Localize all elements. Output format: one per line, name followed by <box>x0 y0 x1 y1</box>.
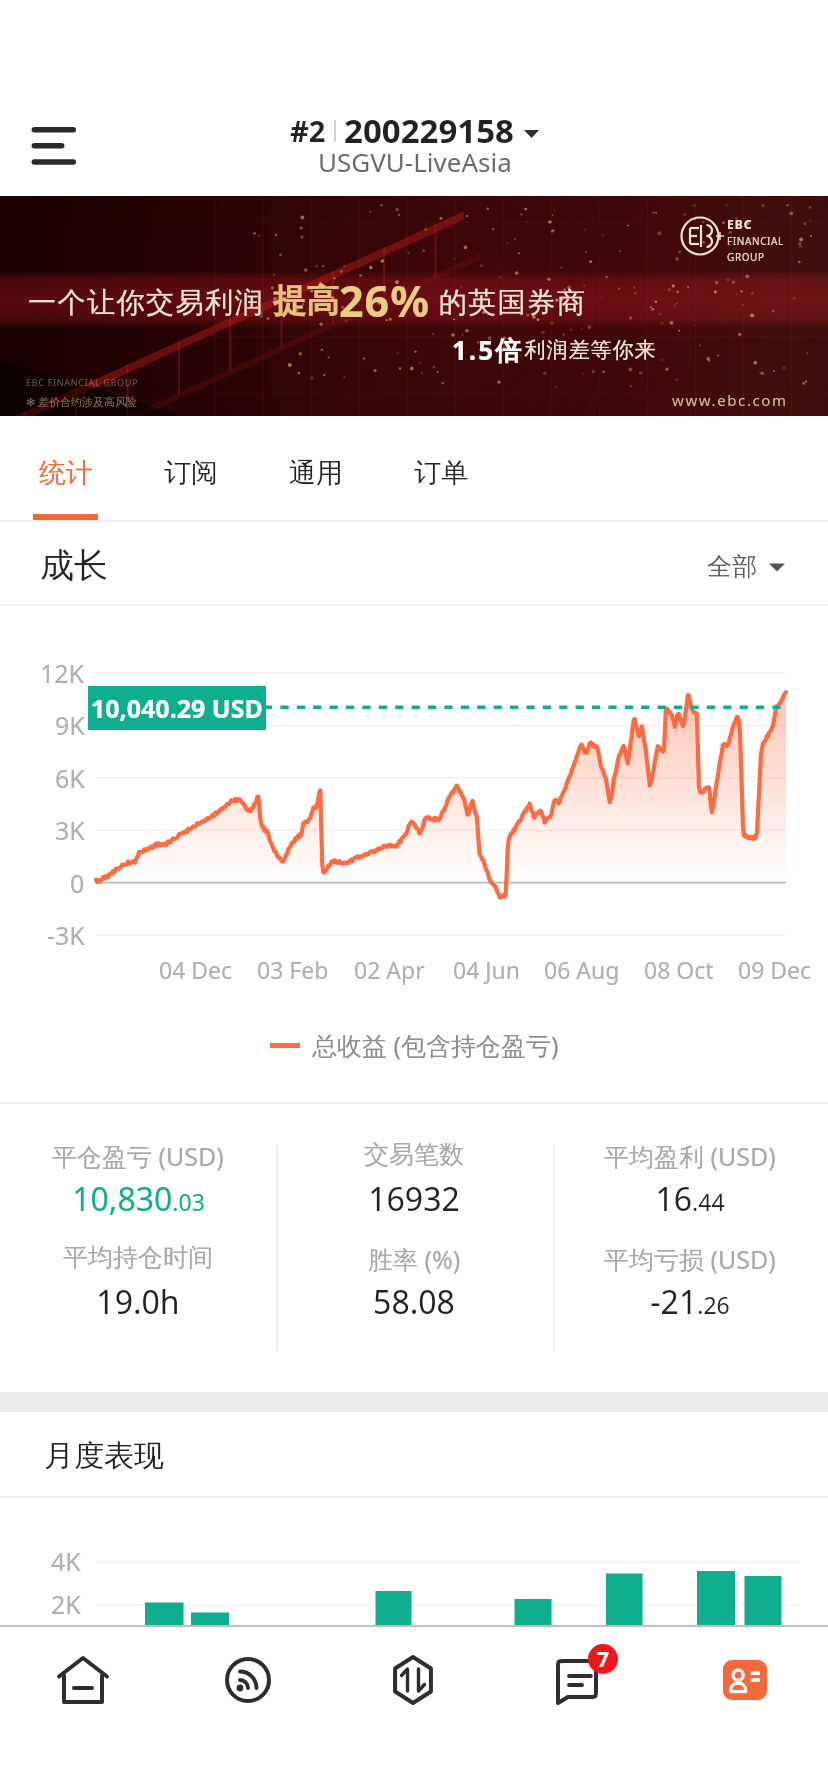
staticText: 04 Dec <box>159 954 233 985</box>
staticText: 平均亏损 (USD) <box>604 1242 776 1276</box>
staticText: 全部 <box>707 551 757 582</box>
button[interactable]: 平均盈利 (USD) <box>552 1102 828 1205</box>
button[interactable]: 统计 <box>3 416 128 522</box>
staticText: EBC FINANCIAL GROUP <box>26 376 139 388</box>
staticText: 26% <box>339 271 430 330</box>
button[interactable]: 胜率 (%) <box>276 1205 552 1308</box>
staticText: USGVU-LiveAsia <box>318 144 512 179</box>
staticText: 10,830.03 <box>72 1177 205 1221</box>
staticText: 2K <box>51 1587 81 1621</box>
staticText: 09 Dec <box>738 954 812 985</box>
staticText: 提高 <box>273 280 339 322</box>
button[interactable]: Trade <box>330 1625 496 1792</box>
button[interactable]: Home <box>0 1625 165 1792</box>
staticText: 200229158 <box>344 108 514 153</box>
staticText: -21.26 <box>650 1280 730 1324</box>
button[interactable]: Menu <box>4 106 84 186</box>
staticText: 订单 <box>414 456 468 490</box>
staticText: www.ebc.com <box>672 390 788 410</box>
button[interactable]: 平均持仓时间 <box>0 1205 276 1308</box>
staticText: GROUP <box>727 250 765 264</box>
staticText: 平均持仓时间 <box>63 1242 213 1273</box>
button[interactable]: 订单 <box>378 416 503 522</box>
staticText: 7 <box>597 1645 610 1674</box>
staticText: 9K <box>55 708 85 742</box>
button[interactable]: Promotion banner <box>0 196 828 416</box>
staticText: 订阅 <box>164 456 218 490</box>
staticText: 12K <box>40 656 85 690</box>
staticText: 平仓盈亏 (USD) <box>52 1139 224 1173</box>
button[interactable]: 交易笔数 <box>276 1102 552 1205</box>
button[interactable]: Messages <box>496 1625 662 1792</box>
staticText: 10,040.29 USD <box>91 691 263 725</box>
staticText: 的英国券商 <box>430 282 587 320</box>
staticText: 总收益 (包含持仓盈亏) <box>312 1028 559 1062</box>
staticText: 成长 <box>40 544 108 587</box>
staticText: 交易笔数 <box>364 1139 464 1170</box>
staticText: 月度表现 <box>44 1437 164 1475</box>
button[interactable]: 通用 <box>253 416 378 522</box>
staticText: 4K <box>51 1544 81 1578</box>
button[interactable]: Signals <box>165 1625 330 1792</box>
staticText: 19.0h <box>96 1280 180 1324</box>
staticText: #2 <box>290 111 326 150</box>
button[interactable]: 平均亏损 (USD) <box>552 1205 828 1308</box>
staticText: 通用 <box>289 456 343 490</box>
staticText: 3K <box>55 813 85 847</box>
staticText: 利润差等你来 <box>524 337 656 363</box>
staticText: FINANCIAL <box>727 234 784 248</box>
staticText: -3K <box>47 918 85 952</box>
staticText: EBC <box>727 216 753 232</box>
staticText: 16.44 <box>655 1177 725 1221</box>
staticText: 06 Aug <box>544 954 620 985</box>
button[interactable]: 平仓盈亏 (USD) <box>0 1102 276 1205</box>
staticText: 1.5倍 <box>452 332 524 368</box>
staticText: ✻ 差价合约涉及高风险 <box>26 394 138 409</box>
button[interactable]: 全部 <box>707 551 785 582</box>
staticText: 平均盈利 (USD) <box>604 1139 776 1173</box>
staticText: 胜率 (%) <box>368 1242 461 1276</box>
staticText: 6K <box>55 761 85 795</box>
staticText: 04 Jun <box>453 954 520 985</box>
staticText: 03 Feb <box>257 954 329 985</box>
staticText: 0 <box>70 866 85 900</box>
button[interactable]: Profile <box>662 1625 828 1792</box>
staticText: 统计 <box>39 456 93 490</box>
staticText: 58.08 <box>373 1280 455 1324</box>
staticText: 08 Oct <box>644 954 714 985</box>
button[interactable]: 订阅 <box>128 416 253 522</box>
staticText: 一个让你交易利润 <box>28 282 273 320</box>
staticText: 16932 <box>368 1177 460 1221</box>
staticText: 02 Apr <box>354 954 425 985</box>
